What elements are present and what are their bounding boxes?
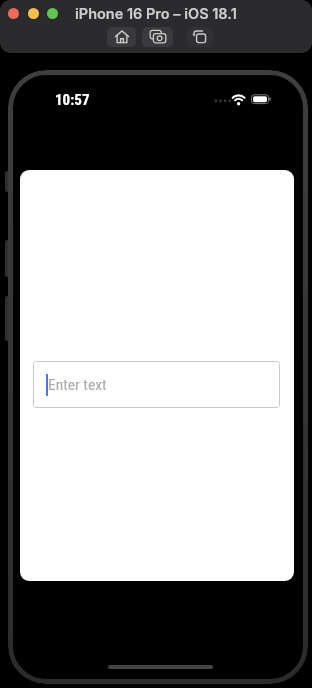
button[interactable] [187,27,213,47]
staticText: 10:57 [55,91,90,109]
button[interactable] [8,8,19,19]
button[interactable] [28,8,39,19]
button[interactable] [47,8,58,19]
button[interactable] [107,27,136,47]
staticText: Enter text [48,376,107,394]
button[interactable]: Enter text [33,361,280,408]
staticText: iPhone 16 Pro – iOS 18.1 [75,5,237,23]
button[interactable] [142,27,173,47]
